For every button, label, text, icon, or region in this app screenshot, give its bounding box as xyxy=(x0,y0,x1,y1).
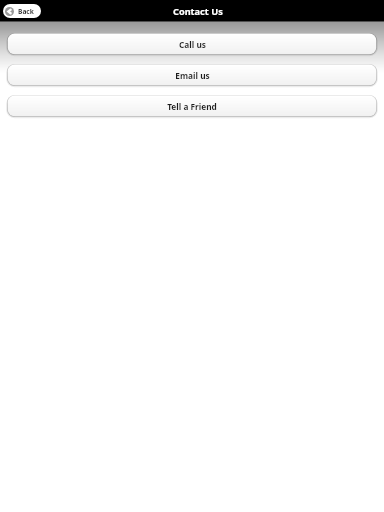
staticText: Call us xyxy=(179,39,206,50)
staticText: Email us xyxy=(175,70,210,81)
button[interactable]: Call us xyxy=(7,33,377,55)
staticText: Contact Us xyxy=(173,5,223,18)
staticText: Tell a Friend xyxy=(167,101,217,112)
other: Back xyxy=(5,7,14,16)
button[interactable]: Back xyxy=(3,4,41,18)
button[interactable]: Email us xyxy=(7,64,377,86)
button[interactable]: Tell a Friend xyxy=(7,95,377,117)
staticText: Back xyxy=(18,7,34,16)
